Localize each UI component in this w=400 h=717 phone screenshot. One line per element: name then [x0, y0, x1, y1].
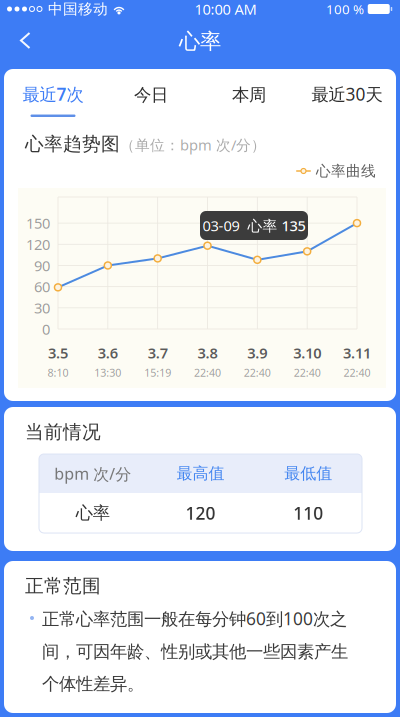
staticText: 最近7次 — [22, 82, 83, 105]
staticText: 30 — [34, 298, 50, 318]
staticText: 22:40 — [194, 365, 221, 380]
staticText: bpm 次/分 — [54, 463, 131, 484]
staticText: 最近30天 — [311, 82, 382, 105]
staticText: 15:19 — [144, 365, 171, 380]
staticText: 最低值 — [284, 464, 332, 483]
staticText: 心率 135 — [247, 216, 305, 235]
staticText: 22:40 — [294, 365, 321, 380]
staticText: 正常范围 — [25, 574, 101, 597]
button[interactable]: 今日 — [102, 69, 200, 121]
staticText: 心率 — [76, 502, 110, 524]
staticText: 3.8 — [197, 343, 217, 362]
staticText: 120 — [26, 235, 50, 254]
button[interactable]: 最近7次 — [4, 69, 102, 121]
staticText: 3.10 — [293, 343, 321, 362]
staticText: 本周 — [232, 84, 266, 105]
staticText: 150 — [26, 213, 50, 233]
staticText: 3.11 — [343, 343, 371, 362]
staticText: 22:40 — [343, 365, 370, 380]
button[interactable]: 最近30天 — [298, 69, 396, 121]
staticText: 100 % — [326, 0, 364, 18]
staticText: 110 — [293, 501, 323, 524]
staticText: 10:00 AM — [194, 0, 256, 19]
button[interactable]: Back — [12, 25, 48, 61]
staticText: 0 — [42, 319, 50, 339]
staticText: 最高值 — [176, 464, 224, 483]
staticText: 120 — [185, 501, 215, 524]
staticText: 90 — [34, 256, 50, 275]
staticText: 3.7 — [148, 343, 168, 362]
staticText: 心率曲线 — [316, 162, 376, 180]
staticText: 8:10 — [47, 365, 68, 380]
staticText: 今日 — [134, 84, 168, 105]
staticText: 当前情况 — [25, 420, 101, 443]
staticText: 3.5 — [48, 343, 68, 362]
staticText: 正常心率范围一般在每分钟60到100次之间，可因年龄、性别或其他一些因素产生个体… — [42, 607, 348, 695]
staticText: 心率趋势图 — [25, 132, 120, 155]
staticText: 3.6 — [98, 343, 118, 362]
staticText: 22:40 — [244, 365, 271, 380]
staticText: 中国移动 — [48, 0, 108, 18]
staticText: 13:30 — [94, 365, 121, 380]
staticText: （单位：bpm 次/分） — [120, 135, 266, 154]
staticText: 60 — [34, 277, 50, 296]
staticText: 03-09 — [202, 216, 239, 235]
staticText: 3.9 — [247, 343, 267, 362]
staticText: 心率 — [179, 28, 221, 55]
button[interactable]: 本周 — [200, 69, 298, 121]
